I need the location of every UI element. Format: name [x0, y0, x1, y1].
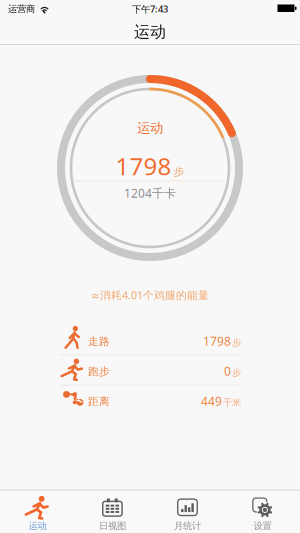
staticText: 1204千卡 — [124, 185, 176, 201]
staticText: 月统计 — [174, 520, 201, 532]
staticText: 步 — [232, 367, 241, 378]
button[interactable]: 设置 — [225, 490, 300, 533]
staticText: 0 — [224, 363, 231, 379]
staticText: 1798 — [203, 333, 231, 349]
staticText: 1798 — [115, 150, 171, 182]
staticText: 千米 — [223, 397, 241, 408]
staticText: 距离 — [88, 395, 110, 408]
staticText: 跑步 — [88, 365, 110, 378]
button[interactable]: 月统计 — [150, 490, 225, 533]
staticText: 449 — [201, 393, 222, 409]
staticText: 步 — [232, 337, 241, 348]
staticText: 走路 — [88, 335, 110, 348]
button[interactable]: 运动 — [0, 490, 75, 533]
button[interactable]: 日视图 — [75, 490, 150, 533]
staticText: 运动 — [134, 22, 166, 42]
staticText: 运动 — [137, 120, 163, 136]
staticText: 步 — [173, 165, 184, 178]
staticText: 设置 — [253, 520, 271, 532]
staticText: ≈消耗4.01个鸡腿的能量 — [91, 288, 209, 302]
staticText: 下午7:43 — [132, 3, 168, 15]
staticText: 运营商 — [8, 3, 35, 15]
staticText: 日视图 — [99, 520, 126, 532]
staticText: 运动 — [28, 520, 46, 532]
